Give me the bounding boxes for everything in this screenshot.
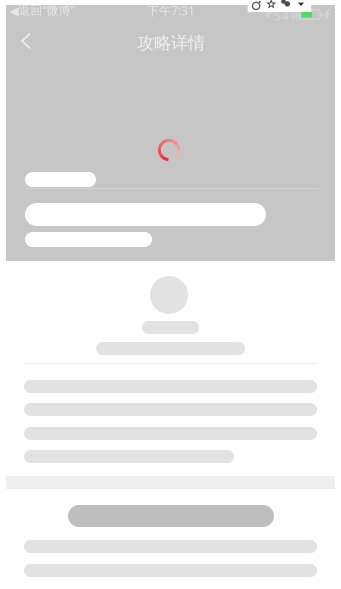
staticText: ◀返回“微博” [9, 2, 74, 18]
button[interactable]: Weibo [249, 0, 262, 10]
staticText: 攻略详情 [137, 32, 205, 54]
button[interactable]: Share [279, 0, 292, 9]
button[interactable]: More [294, 0, 307, 10]
button[interactable]: Back [4, 24, 48, 58]
staticText: 下午7:31 [147, 2, 195, 18]
staticText: 54% [273, 6, 300, 24]
button[interactable]: Favourite [265, 0, 278, 10]
